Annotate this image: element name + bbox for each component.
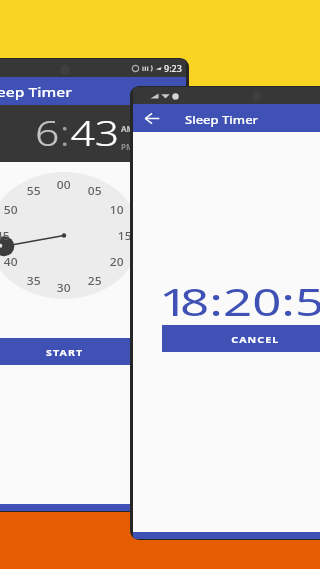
staticText: 50 <box>4 203 18 217</box>
staticText: 40 <box>4 255 18 269</box>
staticText: 30 <box>57 281 71 295</box>
staticText: 20 <box>110 255 124 269</box>
staticText: CANCEL <box>231 333 280 345</box>
button[interactable]: Back <box>140 106 164 130</box>
staticText: 1 <box>159 274 190 327</box>
staticText: Sleep Timer <box>0 84 72 100</box>
staticText: 8:20:53 <box>180 274 320 327</box>
staticText: Sleep Timer <box>185 113 259 127</box>
staticText: 45 <box>0 229 10 243</box>
staticText: START <box>46 346 84 358</box>
staticText: 55 <box>27 184 41 198</box>
staticText: : <box>59 109 70 157</box>
button[interactable]: START <box>0 338 158 365</box>
staticText: 43 <box>70 109 119 157</box>
staticText: 6 <box>35 109 59 157</box>
staticText: 00 <box>57 178 71 192</box>
staticText: 15 <box>118 229 132 243</box>
staticText: AM <box>121 123 135 134</box>
staticText: 35 <box>27 274 41 288</box>
staticText: 25 <box>88 274 102 288</box>
staticText: PM <box>121 141 134 152</box>
button[interactable]: CANCEL <box>162 325 320 352</box>
staticText: 9:23 <box>164 62 182 74</box>
staticText: 10 <box>110 203 124 217</box>
staticText: 05 <box>88 184 102 198</box>
